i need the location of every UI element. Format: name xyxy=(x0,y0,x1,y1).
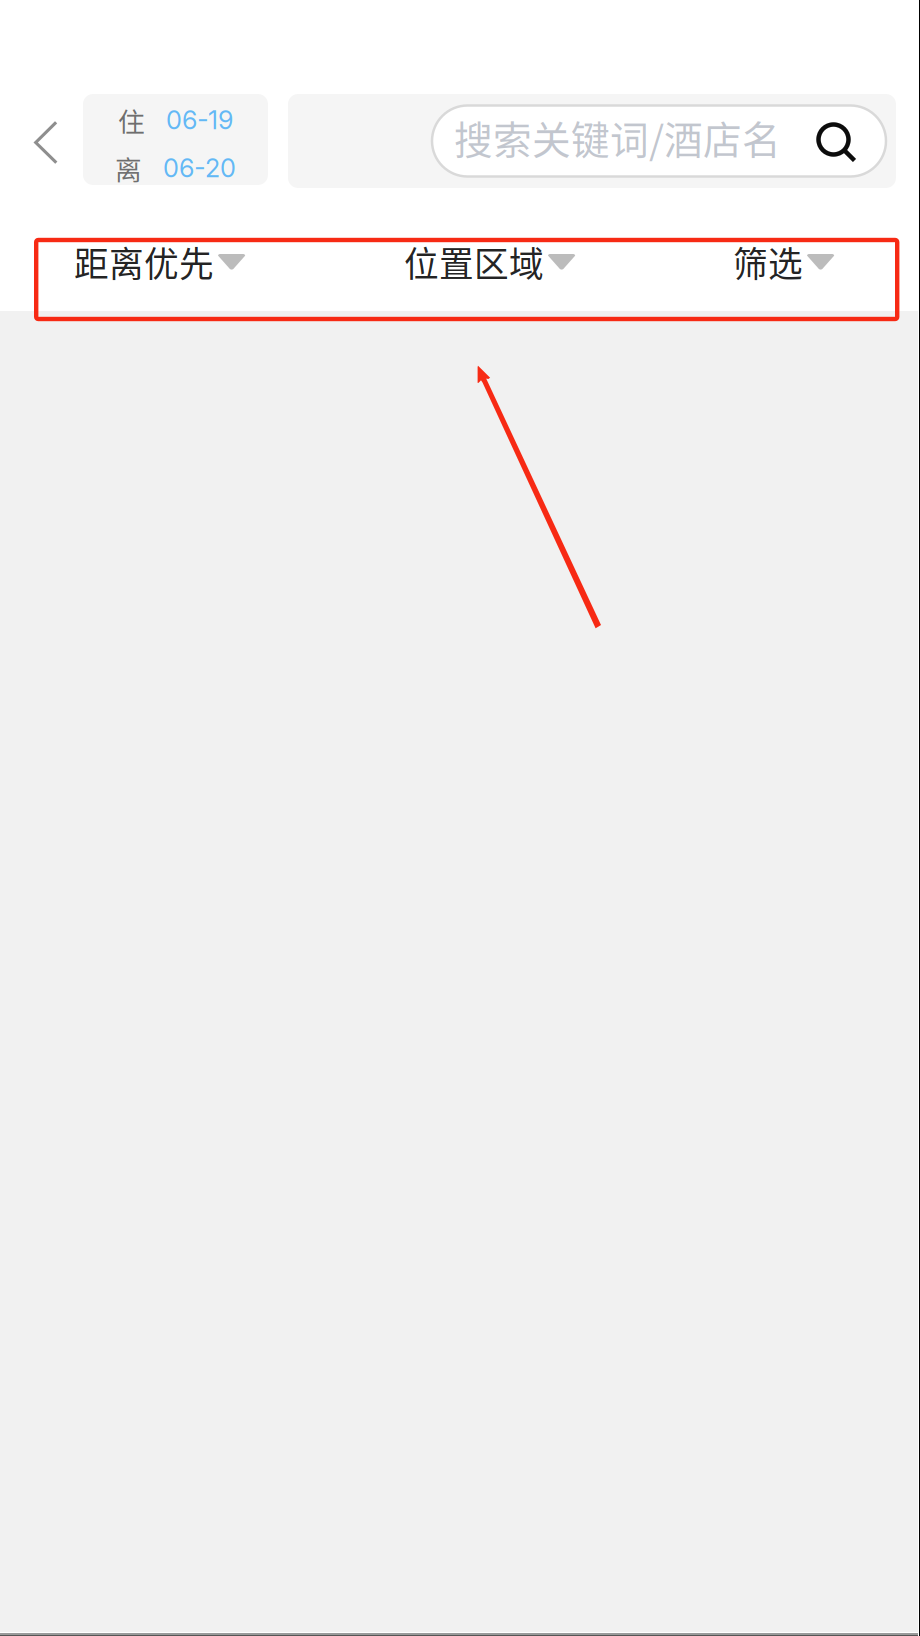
staticText: 搜索关键词/酒店名 xyxy=(454,109,781,165)
staticText: 06-20 xyxy=(163,153,236,183)
button[interactable]: Back xyxy=(15,96,77,188)
staticText: 距离优先 xyxy=(74,237,214,287)
staticText: 位置区域 xyxy=(404,237,544,287)
button[interactable]: 搜索关键词/酒店名 xyxy=(288,94,896,188)
staticText: 06-19 xyxy=(166,105,233,135)
button[interactable]: 筛选 xyxy=(733,216,913,308)
button[interactable]: 位置区域 xyxy=(404,216,733,308)
staticText: 离 xyxy=(115,149,142,187)
button[interactable]: 住 xyxy=(83,94,268,185)
staticText: 住 xyxy=(118,101,145,139)
button[interactable]: 距离优先 xyxy=(74,216,404,308)
staticText: 筛选 xyxy=(733,237,803,287)
